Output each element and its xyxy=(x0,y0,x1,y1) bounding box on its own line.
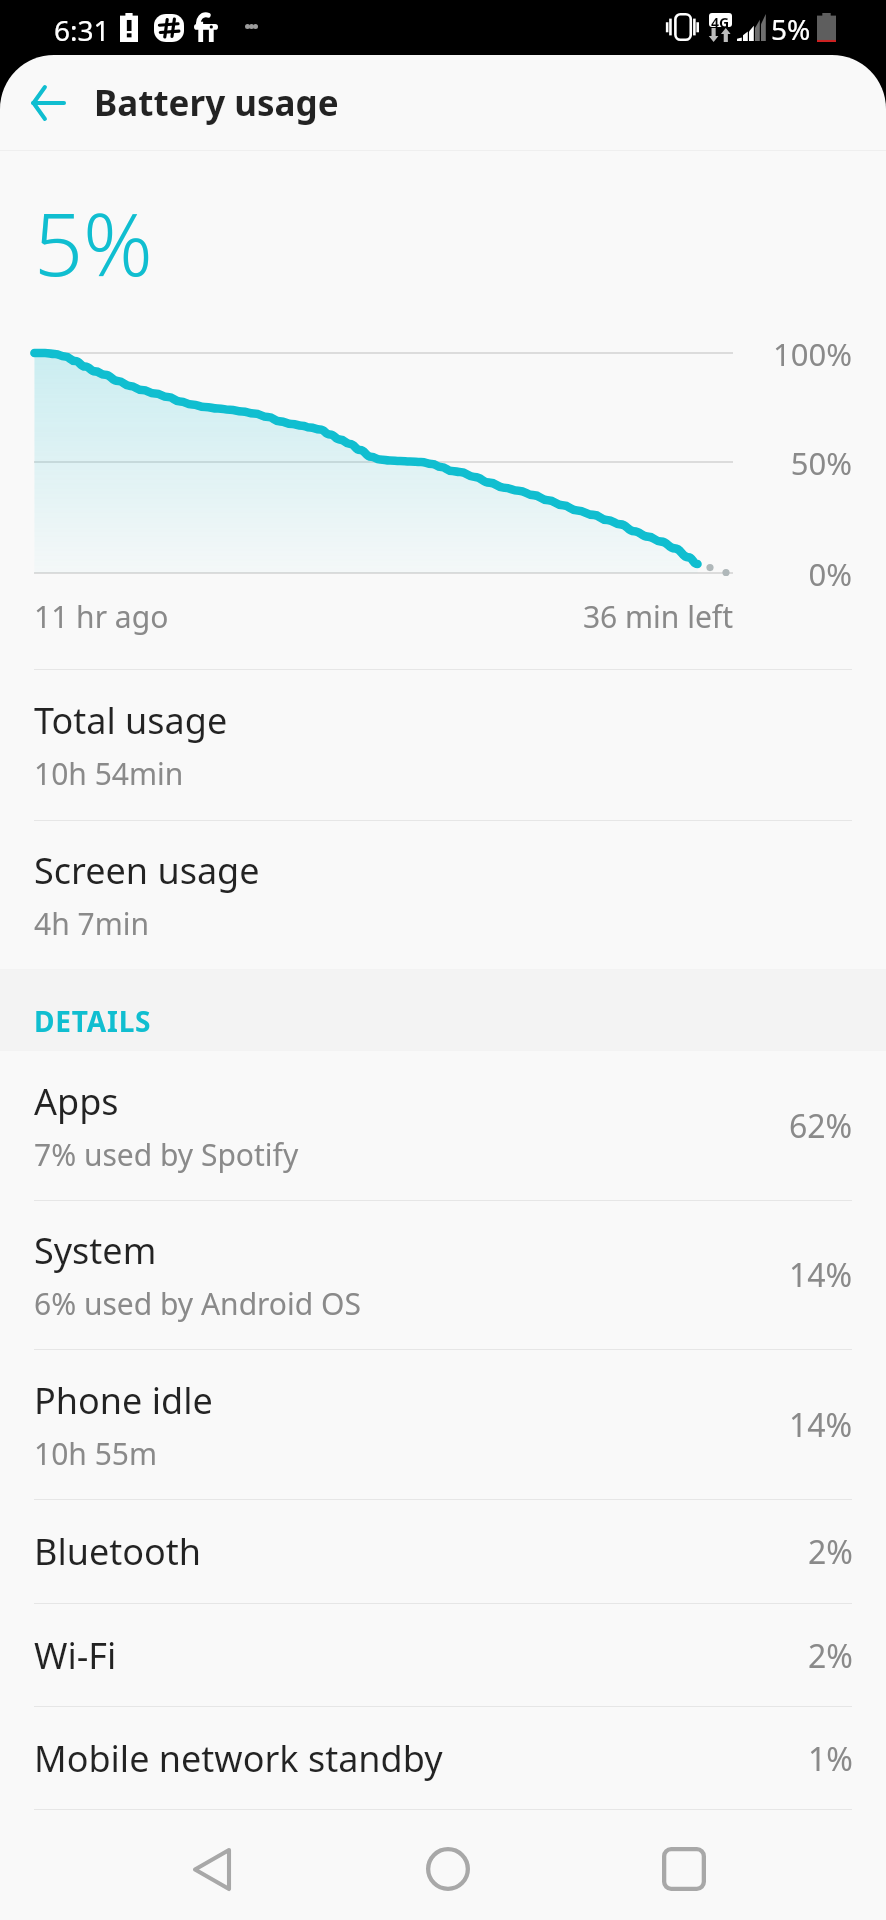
staticText: 62% xyxy=(789,1104,853,1148)
staticText: Apps xyxy=(34,1077,119,1126)
staticText: Wi-Fi xyxy=(34,1631,117,1680)
button[interactable]: Total usage xyxy=(0,670,886,820)
button[interactable]: Wi-Fi xyxy=(0,1604,886,1706)
staticText: 36 min left xyxy=(0,596,733,637)
staticText: 14% xyxy=(789,1403,853,1447)
button[interactable]: Mobile network standby xyxy=(0,1707,886,1809)
button[interactable]: Home xyxy=(393,1814,503,1920)
staticText: 1% xyxy=(808,1737,853,1781)
staticText: 10h 55m xyxy=(34,1433,158,1474)
staticText: 10h 54min xyxy=(34,753,184,794)
staticText: 2% xyxy=(808,1634,853,1678)
staticText: 7% used by Spotify xyxy=(34,1134,299,1175)
staticText: 5% xyxy=(34,184,153,301)
staticText: DETAILS xyxy=(34,1002,152,1040)
staticText: Total usage xyxy=(34,696,228,745)
button[interactable]: Phone idle xyxy=(0,1350,886,1499)
staticText: 50% xyxy=(0,442,852,484)
button[interactable]: Apps xyxy=(0,1051,886,1200)
staticText: Battery usage xyxy=(94,79,339,127)
staticText: System xyxy=(34,1226,157,1275)
button[interactable]: Back xyxy=(157,1814,267,1920)
staticText: Bluetooth xyxy=(34,1527,202,1576)
staticText: 4G xyxy=(711,13,730,27)
staticText: 6:31 xyxy=(54,11,110,49)
staticText: 6% used by Android OS xyxy=(34,1283,361,1324)
staticText: Phone idle xyxy=(34,1376,213,1425)
staticText: Screen usage xyxy=(34,846,260,895)
button[interactable]: Back xyxy=(16,71,80,135)
button[interactable]: Screen usage xyxy=(0,821,886,969)
staticText: 14% xyxy=(789,1253,853,1297)
staticText: 2% xyxy=(808,1530,853,1574)
button[interactable]: Bluetooth xyxy=(0,1500,886,1603)
button[interactable]: System xyxy=(0,1201,886,1349)
button[interactable]: Recent apps xyxy=(629,1814,739,1920)
staticText: 5% xyxy=(771,10,811,48)
staticText: 4h 7min xyxy=(34,903,149,944)
staticText: Mobile network standby xyxy=(34,1734,443,1783)
staticText: 0% xyxy=(0,553,852,595)
staticText: 11 hr ago xyxy=(34,596,169,637)
staticText: 100% xyxy=(0,333,852,375)
